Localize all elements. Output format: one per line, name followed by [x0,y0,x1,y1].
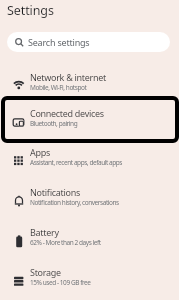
button[interactable]: Connected devices [0,98,179,137]
staticText: Network & internet [30,71,106,83]
staticText: 62% - More than 2 days left [30,238,101,247]
button[interactable]: Battery [0,217,179,256]
staticText: Settings [7,2,54,19]
staticText: 15% used - 109 GB free [30,278,91,287]
staticText: Search settings [28,36,90,48]
button[interactable]: Apps [0,137,179,176]
button[interactable]: Notifications [0,177,179,216]
staticText: Bluetooth, pairing [30,119,78,128]
button[interactable]: Search settings [7,32,170,52]
staticText: Assistant, recent apps, default apps [30,158,123,167]
staticText: Notifications [30,186,80,198]
button[interactable]: Storage [0,257,179,296]
button[interactable]: Network & internet [0,62,179,101]
staticText: Notification history, conversations [30,198,119,207]
staticText: Apps [30,146,50,158]
staticText: Mobile, Wi-Fi, hotspot [30,83,87,92]
staticText: Storage [30,266,61,278]
staticText: Battery [30,226,59,238]
staticText: Connected devices [30,107,104,119]
